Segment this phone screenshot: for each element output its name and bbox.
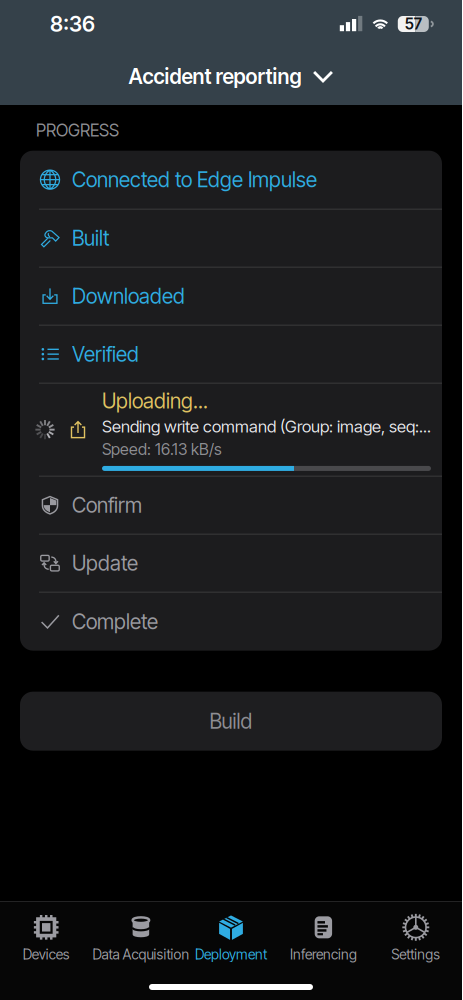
button[interactable]: Settings xyxy=(370,911,462,965)
staticText: 8:36 xyxy=(50,11,95,37)
button[interactable]: Accident reporting xyxy=(120,60,341,93)
staticText: Confirm xyxy=(72,493,142,518)
button[interactable]: Confirm xyxy=(20,477,442,534)
staticText: Devices xyxy=(23,946,70,963)
staticText: Build xyxy=(209,709,252,734)
button[interactable]: Downloaded xyxy=(20,268,442,325)
staticText: Deployment xyxy=(195,946,267,963)
staticText: 57 xyxy=(405,15,422,33)
button[interactable]: Complete xyxy=(20,593,442,651)
staticText: Settings xyxy=(391,946,440,963)
staticText: Connected to Edge Impulse xyxy=(72,167,317,192)
staticText: Verified xyxy=(72,342,139,367)
button[interactable]: Data Acquisition xyxy=(92,911,185,965)
button[interactable]: Built xyxy=(20,210,442,267)
button[interactable]: Uploading... xyxy=(20,384,442,476)
staticText: Inferencing xyxy=(290,946,357,963)
button[interactable]: Inferencing xyxy=(277,911,370,965)
staticText: PROGRESS xyxy=(36,120,119,141)
staticText: Built xyxy=(72,226,110,251)
staticText: Accident reporting xyxy=(128,64,301,89)
staticText: Uploading... xyxy=(102,388,208,413)
button[interactable]: Devices xyxy=(0,911,92,965)
button[interactable]: Connected to Edge Impulse xyxy=(20,151,442,209)
staticText: Data Acquisition xyxy=(92,946,189,963)
staticText: Sending write command (Group: image, seq… xyxy=(102,416,431,437)
staticText: Downloaded xyxy=(72,284,185,309)
button[interactable]: Update xyxy=(20,535,442,592)
button[interactable]: Deployment xyxy=(185,911,277,965)
staticText: Speed: 16.13 kB/s xyxy=(102,440,222,459)
staticText: Update xyxy=(72,551,138,576)
staticText: Complete xyxy=(72,609,158,634)
button[interactable]: Verified xyxy=(20,326,442,383)
button[interactable]: Build xyxy=(20,692,442,751)
